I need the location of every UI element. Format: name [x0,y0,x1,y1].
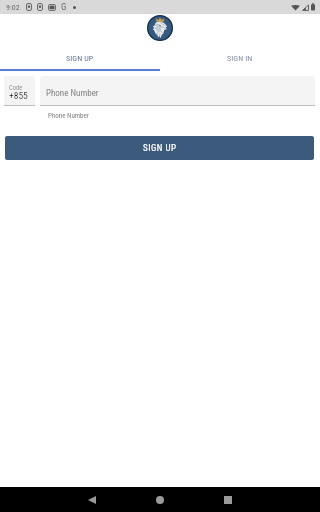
staticText: Code [9,84,23,92]
staticText: Phone Number [46,88,99,99]
staticText: SIGN UP [143,143,177,154]
staticText: 9:02 [6,3,20,12]
button[interactable]: SIGN IN [160,48,320,69]
button[interactable]: Phone Number [40,76,315,105]
staticText: Phone Number [48,112,89,120]
button[interactable]: SIGN UP [0,48,160,69]
staticText: SIGN IN [227,54,253,63]
staticText: G [61,2,67,13]
staticText: +855 [9,90,28,101]
button[interactable]: Recents [209,487,247,512]
button[interactable]: Home [141,487,179,512]
button[interactable]: SIGN UP [5,136,314,160]
staticText: SIGN UP [66,54,94,63]
button[interactable]: Code [4,76,35,105]
button[interactable]: Back [73,487,111,512]
